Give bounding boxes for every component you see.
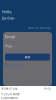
staticText: Email [5,34,15,39]
staticText: Help [44,87,51,90]
staticText: © 2024 Acme Corporation [1,92,20,100]
button[interactable]: Help [44,87,51,90]
staticText: Jordan [2,15,15,21]
staticText: Account settings [28,26,51,29]
staticText: Hello, [2,9,12,14]
staticText: Save [24,55,30,59]
staticText: Need help? [5,64,22,67]
button[interactable]: Need help? [5,64,22,67]
staticText: Terms of use [1,87,18,90]
button[interactable]: Save [5,54,50,61]
staticText: Plan [5,43,12,49]
